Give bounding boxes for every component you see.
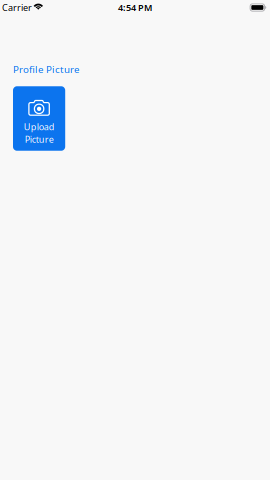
button[interactable]: Upload Picture bbox=[13, 86, 65, 151]
staticText: 4:54 PM bbox=[118, 1, 152, 14]
staticText: Upload Picture bbox=[24, 121, 55, 145]
staticText: Carrier bbox=[2, 1, 32, 14]
staticText: Profile Picture bbox=[13, 62, 79, 76]
